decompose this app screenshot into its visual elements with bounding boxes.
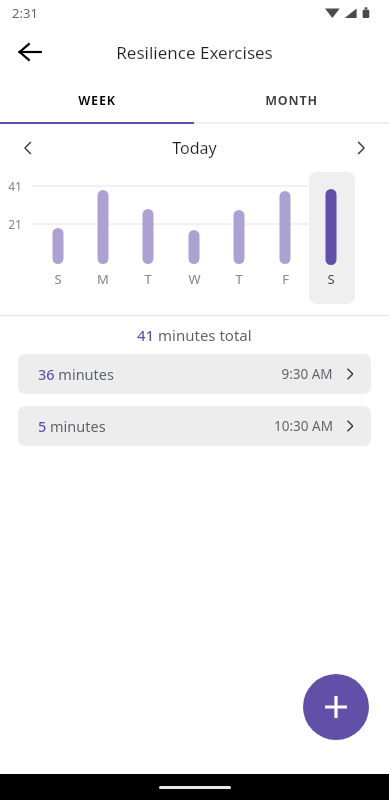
staticText: S [54, 270, 62, 288]
staticText: S [327, 270, 335, 288]
button[interactable]: 36 minutes [18, 354, 371, 394]
button[interactable]: Add exercise [303, 674, 369, 740]
staticText: 41 [8, 178, 22, 194]
staticText: 36 minutes [38, 364, 114, 384]
button[interactable]: Previous week [8, 128, 48, 168]
button[interactable]: Next week [341, 128, 381, 168]
staticText: 10:30 AM [274, 417, 333, 435]
staticText: T [235, 270, 243, 288]
staticText: 5 minutes [38, 416, 106, 436]
button[interactable]: WEEK [0, 78, 194, 122]
button[interactable]: 5 minutes [18, 406, 371, 446]
staticText: Today [172, 137, 217, 159]
staticText: Resilience Exercises [116, 41, 273, 64]
staticText: 2:31 [12, 4, 38, 22]
staticText: MONTH [265, 92, 318, 109]
staticText: M [97, 270, 109, 288]
staticText: 41 minutes total [137, 325, 252, 345]
staticText: 9:30 AM [281, 365, 333, 383]
button[interactable]: Back [8, 30, 52, 74]
staticText: WEEK [78, 92, 116, 109]
staticText: 21 [8, 216, 22, 232]
staticText: W [188, 270, 201, 288]
button[interactable]: MONTH [194, 78, 389, 122]
staticText: T [144, 270, 152, 288]
staticText: F [282, 270, 289, 288]
